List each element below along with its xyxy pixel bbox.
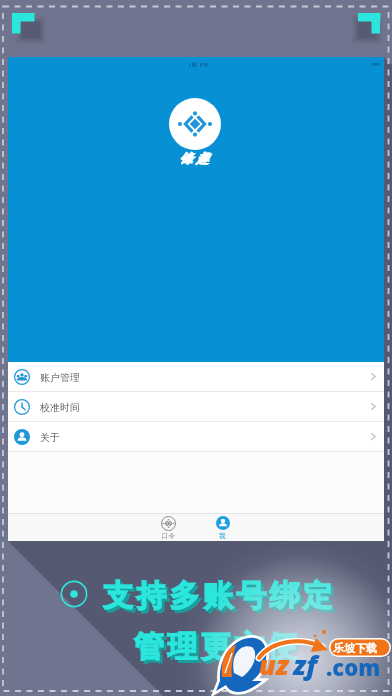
staticText: uz (259, 646, 289, 683)
staticText: 账户管理 (40, 371, 80, 383)
staticText: 校准时间 (40, 401, 80, 413)
button[interactable]: Me tab (195, 513, 250, 541)
button[interactable]: 校准时间 (8, 392, 384, 422)
staticText: .com (326, 652, 381, 682)
staticText: 管理更方便 (137, 631, 304, 669)
staticText: 关于 (40, 431, 60, 443)
staticText: 锋趣 (160, 150, 232, 166)
staticText: zf (293, 646, 318, 683)
staticText: 我 (219, 532, 226, 540)
button[interactable]: 账户管理 (8, 362, 384, 392)
staticText: 支持多账号绑定 (103, 577, 337, 615)
button[interactable]: Token tab (141, 513, 196, 541)
staticText: 乐坡下载 (333, 641, 377, 655)
button[interactable]: 关于 (8, 422, 384, 452)
staticText: 支持多账号绑定 (106, 580, 340, 618)
staticText: 口令 (162, 532, 175, 540)
staticText: 管理更方便 (134, 628, 301, 666)
